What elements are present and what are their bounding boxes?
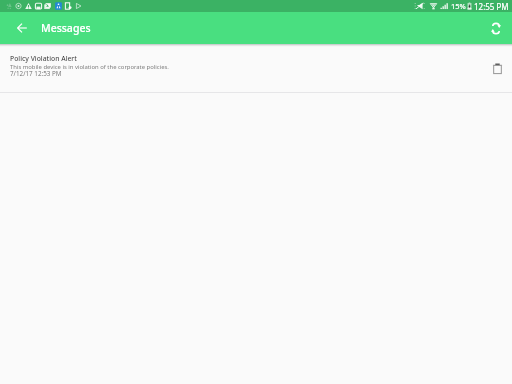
button[interactable]: Delete	[482, 48, 512, 92]
staticText: Policy Violation Alert	[10, 54, 77, 63]
staticText: 7/12/17 12:53 PM	[10, 69, 62, 78]
staticText: 15%	[451, 1, 466, 11]
staticText: Messages	[41, 21, 91, 35]
button[interactable]: Policy Violation Alert	[0, 48, 512, 93]
staticText: This mobile device is in violation of th…	[10, 63, 169, 71]
button[interactable]: Back	[8, 14, 36, 42]
staticText: 12:55 PM	[474, 1, 509, 12]
button[interactable]: Refresh	[482, 14, 510, 42]
